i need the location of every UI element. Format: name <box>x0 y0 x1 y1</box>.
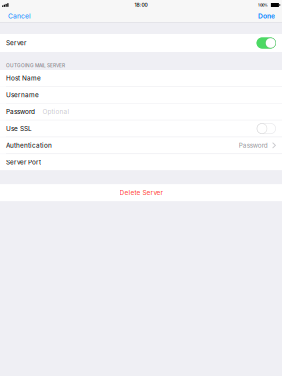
button[interactable]: Password <box>0 104 282 120</box>
staticText: Password <box>6 108 35 116</box>
staticText: Cancel <box>8 12 31 20</box>
button[interactable]: Use SSL <box>0 120 282 137</box>
staticText: Password <box>239 141 268 149</box>
button[interactable]: Cancel <box>0 10 37 22</box>
button[interactable]: Done <box>252 10 282 22</box>
staticText: Done <box>258 12 275 20</box>
button[interactable]: On <box>257 37 276 48</box>
staticText: Delete Server <box>119 189 162 196</box>
button[interactable]: Host Name <box>0 70 282 86</box>
staticText: 100% <box>258 3 268 7</box>
button[interactable]: Off <box>257 123 276 134</box>
button[interactable]: Delete Server <box>0 184 282 201</box>
staticText: Server Port <box>6 158 41 166</box>
staticText: Server <box>6 39 26 47</box>
button[interactable]: Username <box>0 87 282 103</box>
staticText: Username <box>6 91 39 99</box>
button[interactable]: Authentication <box>0 137 282 153</box>
staticText: Host Name <box>6 74 41 82</box>
button[interactable]: Server Port <box>0 154 282 170</box>
button[interactable]: Server <box>0 34 282 52</box>
staticText: Use SSL <box>6 125 32 132</box>
staticText: OUTGOING MAIL SERVER <box>6 63 65 68</box>
staticText: 18:00 <box>134 2 147 8</box>
staticText: Authentication <box>6 141 52 149</box>
staticText: Optional <box>43 108 70 116</box>
